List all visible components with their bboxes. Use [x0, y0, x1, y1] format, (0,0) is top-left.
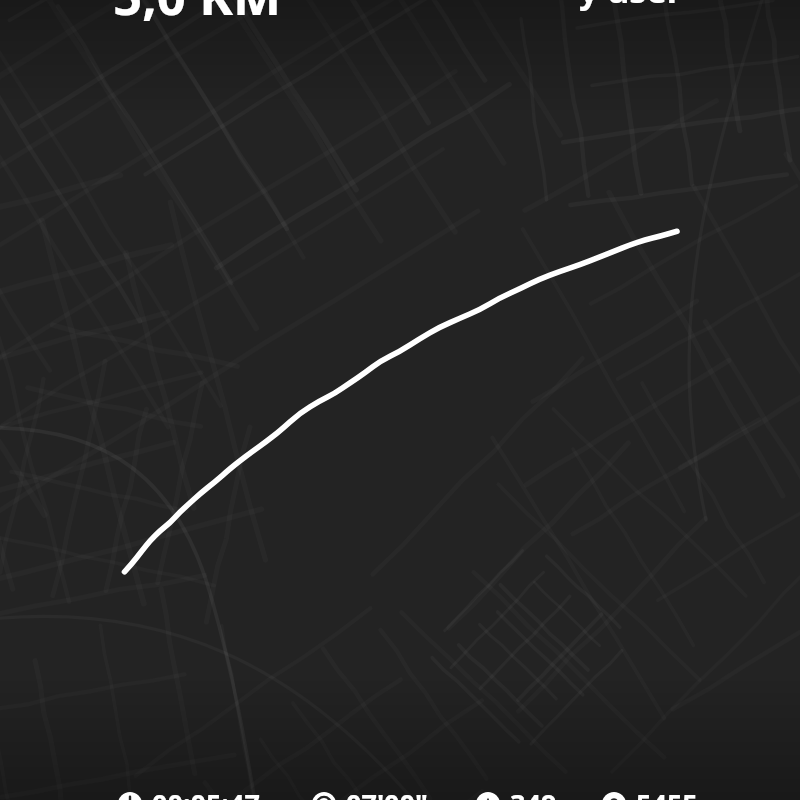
button[interactable]: 349 — [476, 785, 602, 800]
staticText: 349 — [510, 785, 557, 800]
button[interactable]: 07'00" — [312, 785, 476, 800]
staticText: 5,0 KM — [113, 0, 282, 29]
staticText: 00:05:47 — [152, 785, 260, 800]
button[interactable]: 00:05:47 — [118, 785, 312, 800]
staticText: 5455 — [636, 785, 698, 800]
button[interactable]: 5,0 KM — [113, 0, 282, 29]
button[interactable]: y user — [579, 0, 682, 13]
button[interactable]: 5455 — [602, 785, 698, 800]
staticText: y user — [579, 0, 682, 13]
staticText: 07'00" — [346, 785, 428, 800]
